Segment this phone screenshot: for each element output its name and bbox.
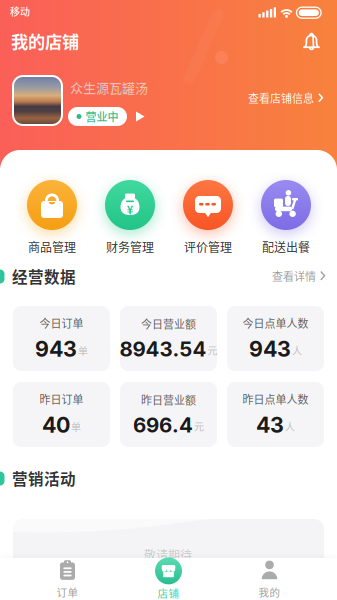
staticText: 敬请期待 <box>144 546 192 563</box>
button[interactable]: 评价管理 <box>169 180 247 255</box>
staticText: 943 <box>249 336 291 362</box>
staticText: 昨日点单人数 <box>242 391 308 407</box>
staticText: 40 <box>42 412 70 438</box>
staticText: 经营数据 <box>12 265 76 287</box>
staticText: 营销活动 <box>12 467 76 489</box>
button[interactable]: 店铺 <box>118 558 219 600</box>
staticText: 查看详情 <box>272 268 316 284</box>
button[interactable]: 查看店铺信息 <box>248 90 324 106</box>
staticText: 昨日营业额 <box>141 392 196 407</box>
button[interactable]: 配送出餐 <box>247 180 325 255</box>
staticText: 我的 <box>258 584 280 600</box>
button[interactable]: 商品管理 <box>13 180 91 255</box>
staticText: 查看店铺信息 <box>248 90 314 106</box>
staticText: 昨日订单 <box>39 391 83 407</box>
staticText: 今日订单 <box>39 315 83 331</box>
staticText: 元 <box>207 343 217 357</box>
staticText: 43 <box>256 412 284 438</box>
staticText: 商品管理 <box>28 238 76 255</box>
button[interactable]: 我的 <box>219 558 320 600</box>
button[interactable]: 查看详情 <box>272 268 326 284</box>
button[interactable]: ¥ <box>91 180 169 255</box>
staticText: 店铺 <box>157 585 179 600</box>
staticText: 评价管理 <box>184 238 232 255</box>
staticText: 订单 <box>56 584 78 600</box>
staticText: 943 <box>35 336 77 362</box>
staticText: 696.4 <box>133 413 193 437</box>
staticText: ¥ <box>127 201 133 217</box>
staticText: 今日营业额 <box>141 316 196 331</box>
staticText: 移动 <box>10 4 30 18</box>
button[interactable]: 通知 <box>300 31 324 55</box>
staticText: 8943.54 <box>119 337 206 361</box>
staticText: 配送出餐 <box>262 238 310 255</box>
staticText: 单 <box>71 419 81 434</box>
staticText: 众生源瓦罐汤 <box>70 78 148 97</box>
staticText: 营业中 <box>85 108 118 124</box>
button[interactable]: 订单 <box>17 558 118 600</box>
staticText: 财务管理 <box>106 238 154 255</box>
button[interactable]: 展开 <box>135 111 146 122</box>
staticText: 人 <box>292 343 302 358</box>
staticText: 今日点单人数 <box>242 315 308 331</box>
staticText: 元 <box>194 419 204 433</box>
staticText: 单 <box>78 343 88 358</box>
button[interactable]: 营业中 <box>68 107 127 126</box>
staticText: 我的店铺 <box>11 28 79 53</box>
staticText: 人 <box>285 419 295 434</box>
